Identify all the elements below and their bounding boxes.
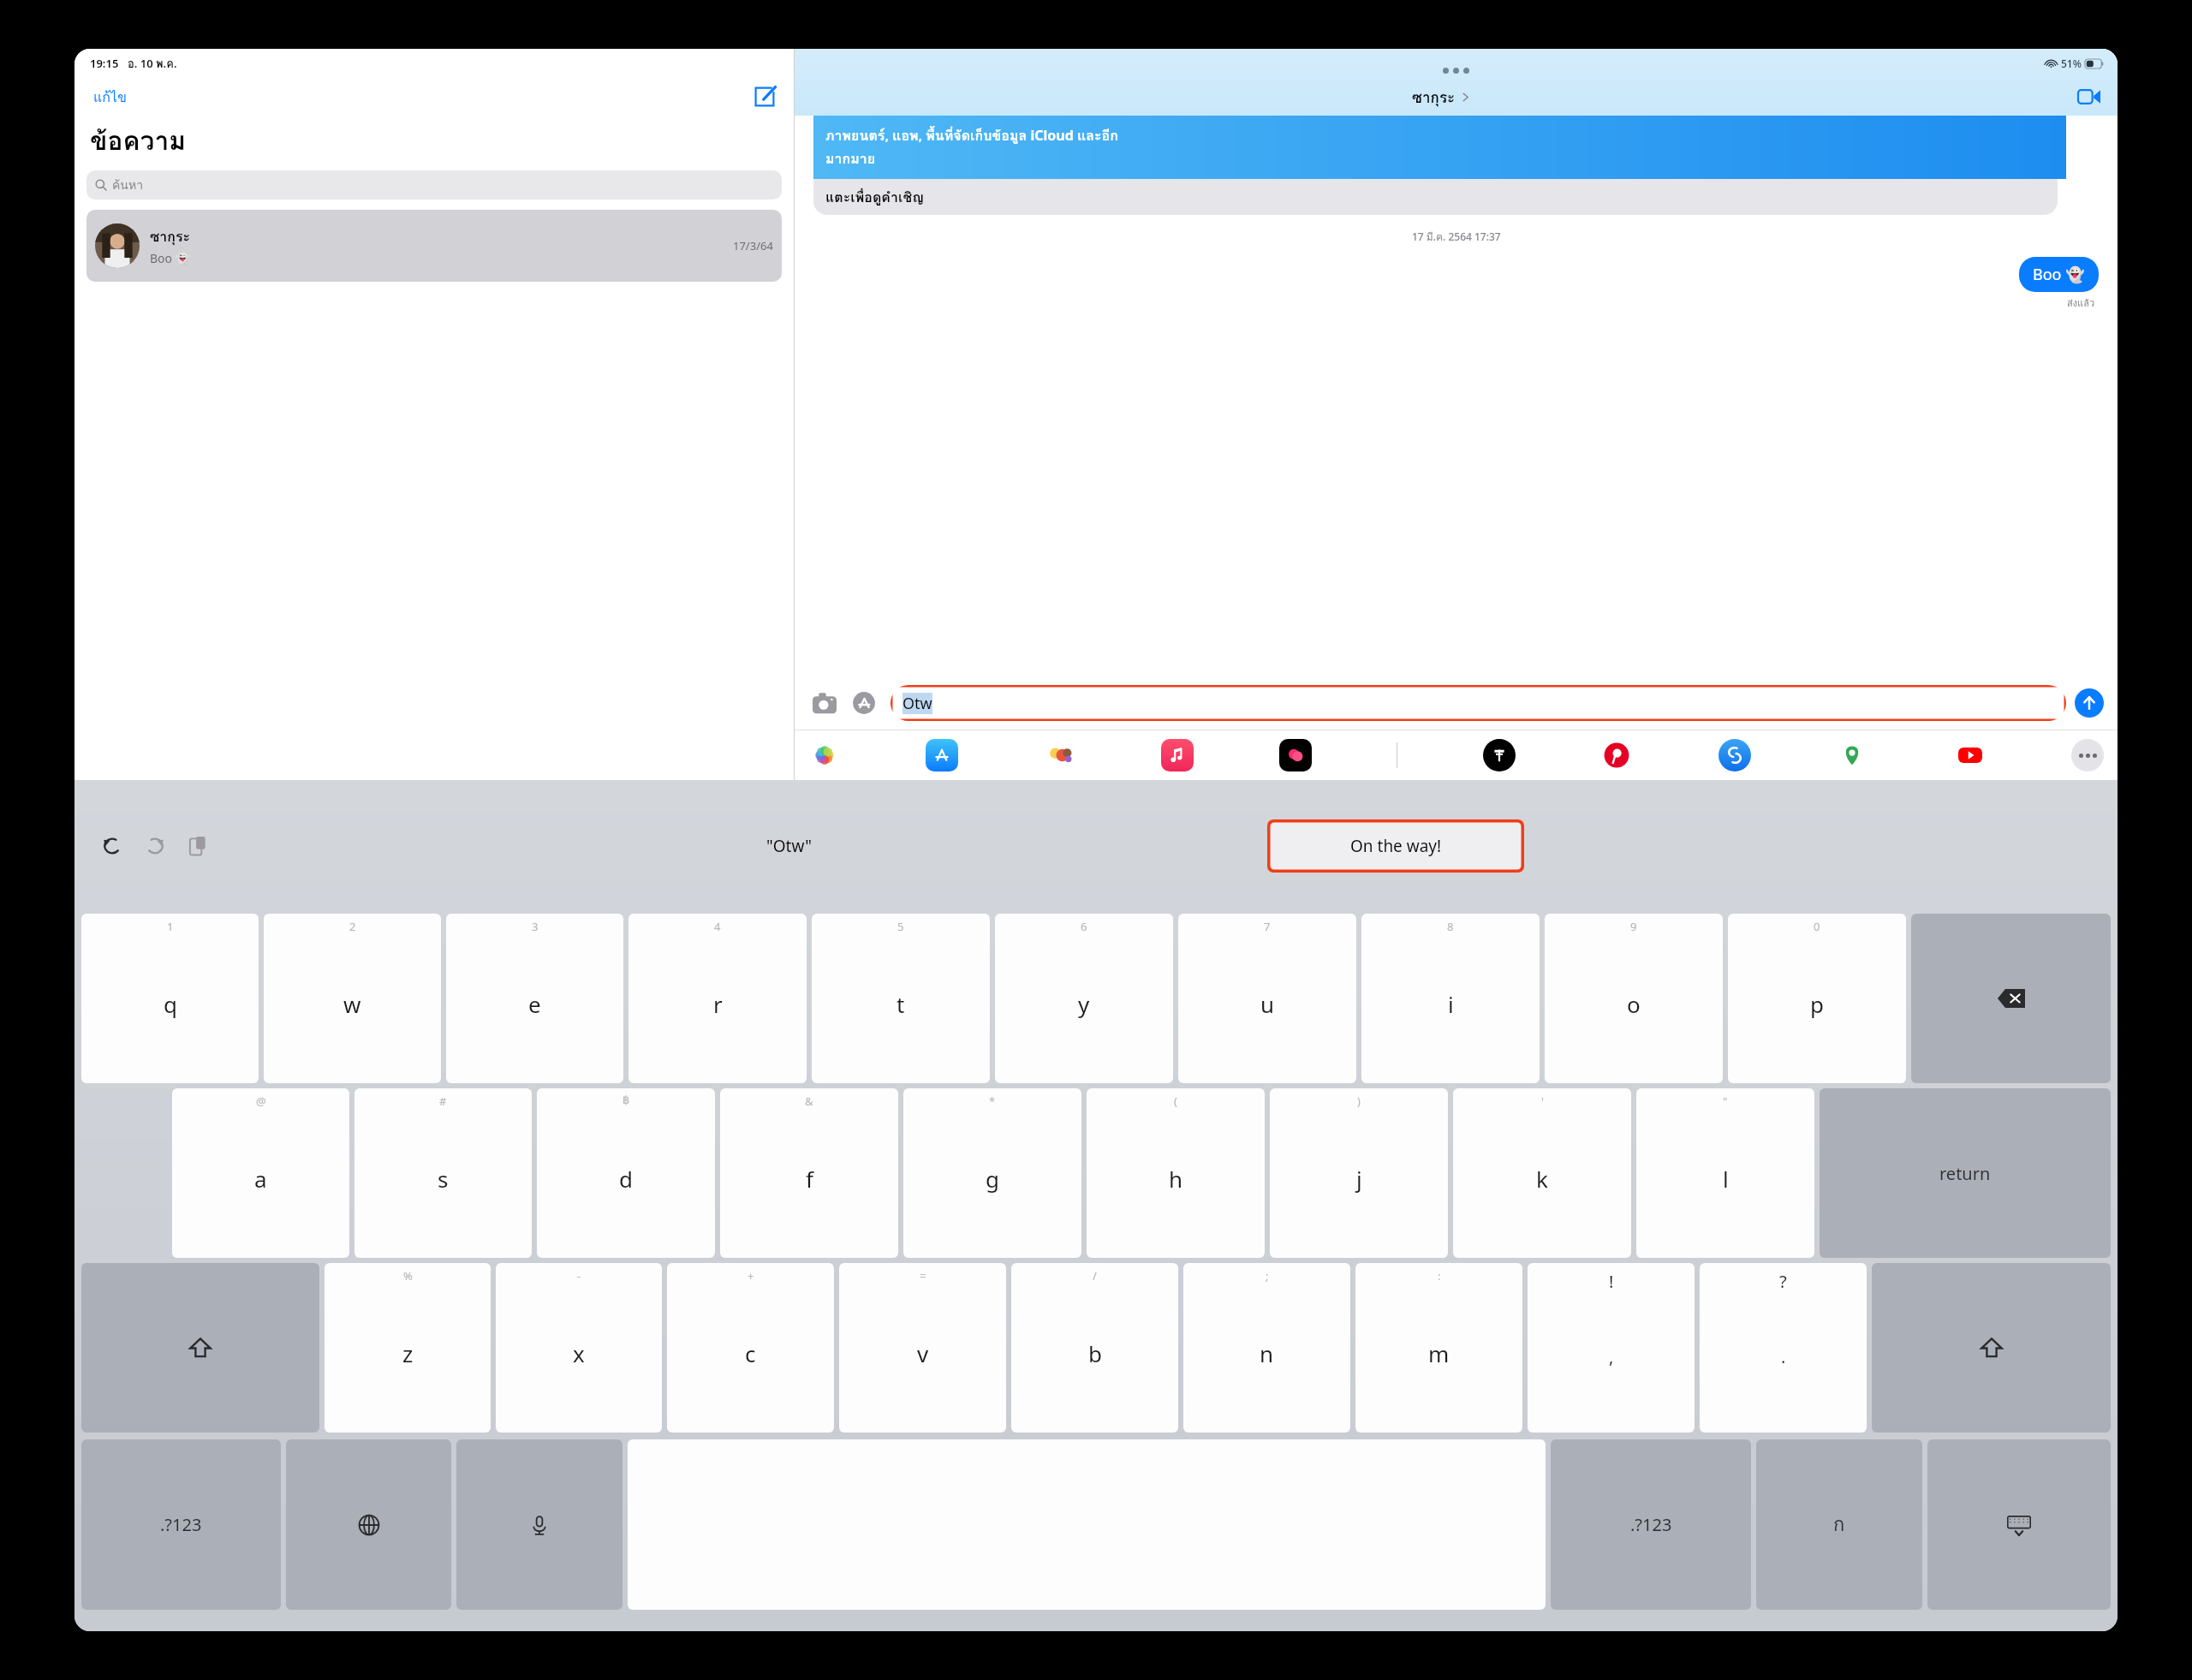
button[interactable] [628, 1439, 1546, 1610]
button[interactable]: On the way! [1267, 819, 1524, 873]
button[interactable]: ฿ [537, 1088, 715, 1258]
button[interactable]: Hide keyboard [1927, 1439, 2111, 1610]
button[interactable]: Boo 👻 [2019, 257, 2099, 292]
button[interactable]: Otw [890, 685, 2066, 721]
staticText: 3 [532, 919, 539, 934]
button[interactable]: + [667, 1263, 834, 1433]
staticText: x [573, 1338, 585, 1368]
staticText: ข้อความ [90, 121, 187, 162]
staticText: d [619, 1164, 633, 1194]
staticText: 4 [714, 919, 721, 934]
button[interactable]: " [1636, 1088, 1814, 1258]
button[interactable]: ก [1756, 1439, 1922, 1610]
button[interactable]: - [496, 1263, 662, 1433]
button[interactable]: Change keyboard [286, 1439, 451, 1610]
button[interactable]: แก้ไข [90, 83, 130, 111]
button[interactable]: Redo [138, 829, 172, 863]
staticText: ซากุระ [1412, 86, 1456, 109]
button[interactable]: Undo [95, 829, 129, 863]
button[interactable]: App Store [926, 739, 958, 771]
button[interactable]: ' [1453, 1088, 1631, 1258]
button[interactable]: .?123 [1551, 1439, 1751, 1610]
button[interactable]: ; [1183, 1263, 1350, 1433]
staticText: - [577, 1268, 581, 1284]
button[interactable]: = [839, 1263, 1006, 1433]
button[interactable]: Google Maps [1836, 739, 1868, 771]
staticText: b [1088, 1338, 1102, 1368]
button[interactable]: "Otw" [741, 826, 837, 866]
staticText: i [1448, 989, 1454, 1019]
button[interactable]: Dictation [456, 1439, 622, 1610]
button[interactable]: Pinterest [1600, 739, 1633, 771]
staticText: ก [1833, 1510, 1845, 1540]
staticText: ค้นหา [112, 176, 144, 194]
button[interactable]: : [1355, 1263, 1522, 1433]
button[interactable]: Apple Music [1161, 739, 1194, 771]
button[interactable]: ค้นหา [86, 170, 782, 200]
button[interactable]: Shift [81, 1263, 319, 1433]
staticText: 0 [1814, 919, 1820, 934]
staticText: . [1781, 1345, 1786, 1368]
button[interactable]: 9 [1545, 914, 1723, 1083]
button[interactable]: # [354, 1088, 532, 1258]
button[interactable]: 5 [812, 914, 990, 1083]
button[interactable]: ภาพยนตร์, แอพ, พื้นที่จัดเก็บข้อมูล iClo… [813, 116, 2066, 179]
staticText: แก้ไข [93, 86, 127, 108]
button[interactable]: Fitness [1279, 739, 1312, 771]
button[interactable]: More apps [2071, 739, 2104, 771]
staticText: v [917, 1338, 929, 1368]
staticText: ภาพยนตร์, แอพ, พื้นที่จัดเก็บข้อมูล iClo… [825, 125, 1118, 146]
button[interactable]: ซากุระ [86, 210, 782, 282]
button[interactable]: return [1820, 1088, 2111, 1258]
button[interactable]: 4 [628, 914, 807, 1083]
button[interactable]: Shazam [1718, 739, 1751, 771]
button[interactable]: Photos [808, 739, 841, 771]
staticText: + [748, 1268, 754, 1284]
button[interactable]: * [903, 1088, 1081, 1258]
button[interactable]: Memoji stickers [1044, 739, 1076, 771]
button[interactable]: ( [1087, 1088, 1265, 1258]
button[interactable]: 3 [446, 914, 623, 1083]
button[interactable]: App Store [848, 687, 880, 719]
staticText: * [989, 1093, 996, 1109]
staticText: 1 [167, 919, 174, 934]
button[interactable]: .?123 [81, 1439, 281, 1610]
button[interactable]: ซากุระ [1412, 86, 1470, 109]
staticText: อ. 10 พ.ค. [128, 55, 177, 73]
button[interactable]: % [325, 1263, 491, 1433]
staticText: 19:15 [90, 56, 119, 71]
staticText: l [1723, 1164, 1729, 1194]
button[interactable]: @ [172, 1088, 349, 1258]
staticText: 17 มี.ค. 2564 17:37 [1412, 229, 1501, 245]
staticText: r [713, 989, 723, 1019]
staticText: ( [1174, 1093, 1177, 1109]
button[interactable]: ! [1528, 1263, 1695, 1433]
staticText: & [805, 1093, 813, 1109]
button[interactable]: Paste [181, 829, 215, 863]
button[interactable]: 1 [81, 914, 259, 1083]
staticText: ฿ [622, 1093, 630, 1106]
button[interactable]: ) [1270, 1088, 1448, 1258]
staticText: e [528, 989, 541, 1019]
staticText: ส่งแล้ว [2067, 295, 2095, 310]
button[interactable]: Window controls [1443, 68, 1469, 74]
button[interactable]: Camera [808, 687, 841, 719]
button[interactable]: ? [1700, 1263, 1867, 1433]
staticText: j [1356, 1164, 1362, 1194]
button[interactable]: FaceTime video call [2075, 82, 2104, 111]
button[interactable]: 0 [1728, 914, 1906, 1083]
staticText: "Otw" [766, 835, 812, 857]
button[interactable]: Compose new message [751, 83, 778, 110]
button[interactable]: App [1483, 739, 1516, 771]
button[interactable]: Backspace [1911, 914, 2111, 1083]
button[interactable]: Shift [1872, 1263, 2111, 1433]
button[interactable]: 6 [995, 914, 1173, 1083]
button[interactable]: Send [2075, 688, 2104, 718]
button[interactable]: 7 [1178, 914, 1356, 1083]
button[interactable]: YouTube [1954, 739, 1986, 771]
button[interactable]: / [1011, 1263, 1178, 1433]
button[interactable]: แตะเพื่อดูคำเชิญ [813, 179, 2058, 215]
button[interactable]: 2 [264, 914, 441, 1083]
button[interactable]: 8 [1361, 914, 1540, 1083]
button[interactable]: & [720, 1088, 898, 1258]
